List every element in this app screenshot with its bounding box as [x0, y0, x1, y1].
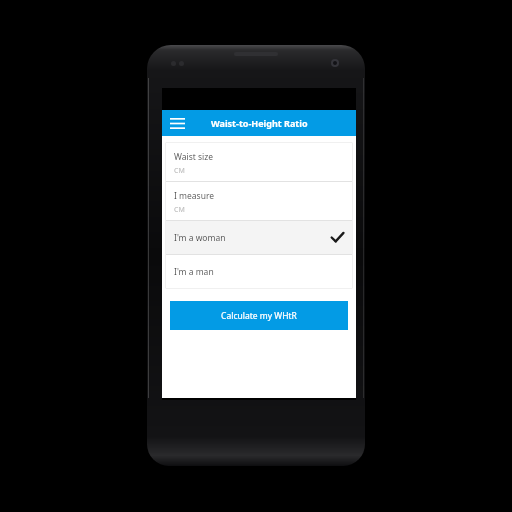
staticText: I'm a woman: [174, 232, 226, 244]
staticText: I'm a man: [174, 266, 214, 278]
staticText: I measure: [174, 190, 215, 202]
button[interactable]: I'm a woman: [166, 221, 352, 254]
staticText: CM: [174, 166, 185, 176]
staticText: Waist size: [174, 151, 214, 163]
button[interactable]: I measure: [166, 182, 352, 220]
button[interactable]: I'm a man: [166, 255, 352, 288]
staticText: Waist-to-Height Ratio: [211, 117, 308, 129]
staticText: Calculate my WHtR: [221, 310, 297, 322]
button[interactable]: Open navigation menu: [166, 112, 188, 134]
button[interactable]: Waist size: [166, 143, 352, 181]
button[interactable]: Calculate my WHtR: [170, 301, 348, 330]
staticText: CM: [174, 205, 185, 215]
